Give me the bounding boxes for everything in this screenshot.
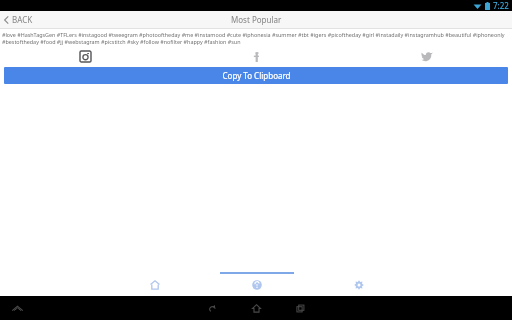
button[interactable]: Settings <box>349 275 369 295</box>
button[interactable]: Share on Instagram <box>76 47 94 65</box>
button[interactable]: BACK <box>0 14 41 25</box>
staticText: #bestoftheday #food #jj #webstagram #pic… <box>2 38 241 45</box>
button[interactable]: Copy To Clipboard <box>4 67 508 84</box>
staticText: BACK <box>12 14 33 25</box>
button[interactable]: Share on Twitter <box>418 47 436 65</box>
button[interactable]: Share on Facebook <box>247 47 265 65</box>
staticText: 7:22 <box>493 0 509 11</box>
button[interactable]: Home <box>145 275 165 295</box>
staticText: Most Popular <box>231 14 282 25</box>
button[interactable]: Help <box>247 275 267 295</box>
button[interactable]: Home <box>234 297 278 319</box>
staticText: #love #HashTagsGen #TFLers #instagood #t… <box>2 31 505 38</box>
button[interactable]: Shortcut <box>8 299 26 317</box>
staticText: Copy To Clipboard <box>222 70 291 81</box>
button[interactable]: Recents <box>278 297 322 319</box>
button[interactable]: Back <box>190 297 234 319</box>
